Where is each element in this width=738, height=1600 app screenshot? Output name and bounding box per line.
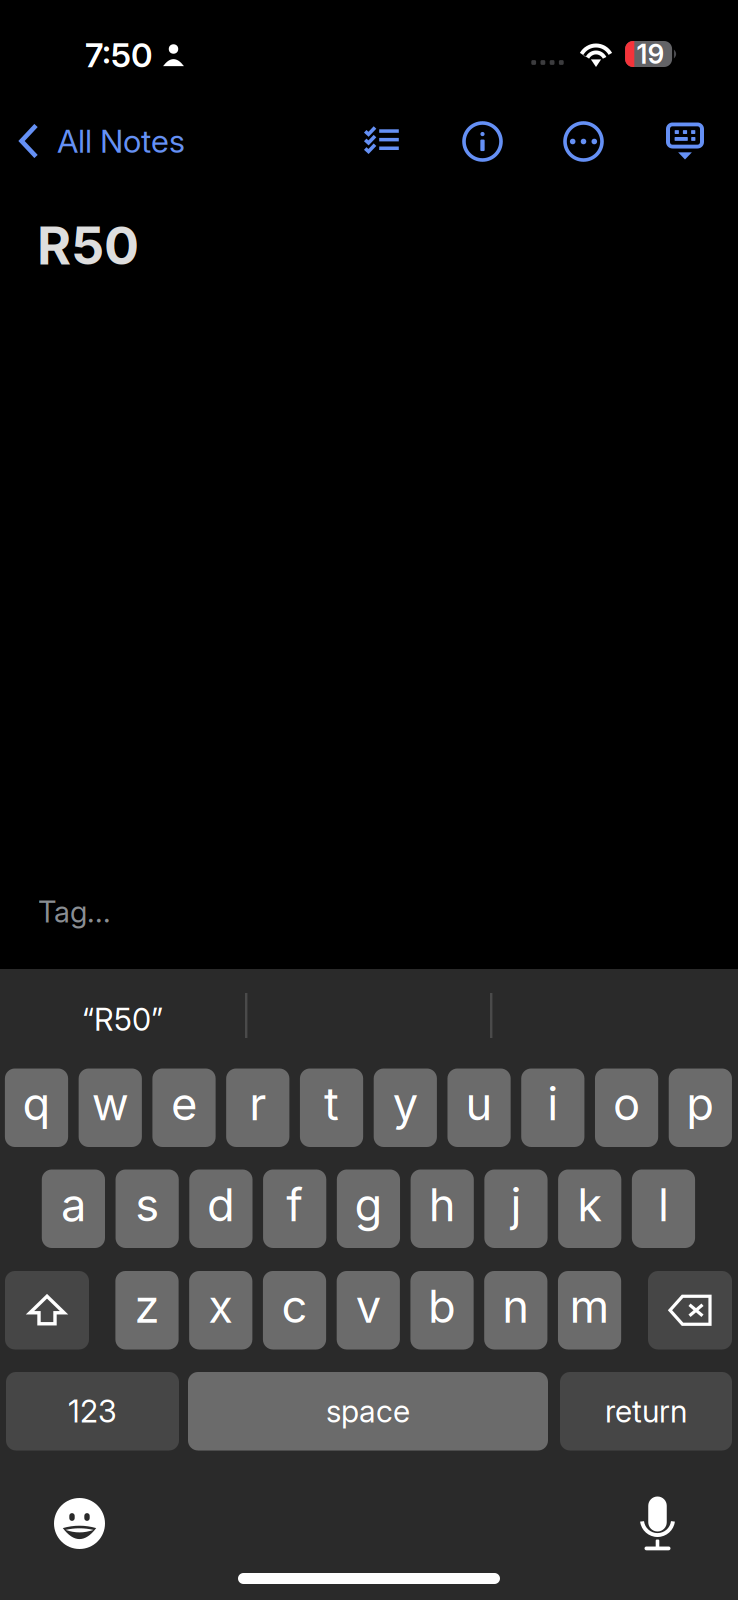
staticText: r bbox=[249, 1076, 266, 1131]
staticText: y bbox=[393, 1076, 418, 1131]
staticText: o bbox=[613, 1076, 640, 1131]
staticText: “R50” bbox=[82, 1001, 163, 1038]
button[interactable]: n bbox=[484, 1271, 547, 1349]
button[interactable]: Delete bbox=[648, 1271, 732, 1349]
staticText: w bbox=[92, 1076, 129, 1131]
staticText: k bbox=[577, 1177, 602, 1232]
button[interactable]: w bbox=[79, 1068, 142, 1147]
button[interactable]: x bbox=[189, 1271, 252, 1349]
button[interactable]: h bbox=[411, 1169, 474, 1248]
button[interactable]: v bbox=[337, 1271, 400, 1349]
staticText: n bbox=[502, 1279, 529, 1334]
staticText: All Notes bbox=[57, 122, 185, 160]
button[interactable]: space bbox=[188, 1372, 548, 1450]
button[interactable]: c bbox=[263, 1271, 326, 1349]
button[interactable]: i bbox=[521, 1068, 584, 1147]
staticText: x bbox=[208, 1279, 233, 1334]
staticText: j bbox=[510, 1177, 521, 1232]
staticText: 123 bbox=[68, 1393, 117, 1430]
staticText: 7:50 bbox=[85, 35, 153, 75]
staticText: Tag... bbox=[38, 894, 111, 929]
staticText: u bbox=[466, 1076, 493, 1131]
button[interactable]: t bbox=[300, 1068, 363, 1147]
button[interactable]: Dictate bbox=[640, 1487, 675, 1541]
button[interactable]: y bbox=[374, 1068, 437, 1147]
button[interactable]: b bbox=[410, 1271, 474, 1349]
staticText: q bbox=[22, 1076, 50, 1131]
staticText: t bbox=[324, 1076, 339, 1131]
staticText: v bbox=[356, 1279, 381, 1334]
button[interactable]: Checklist bbox=[364, 127, 399, 153]
button[interactable]: g bbox=[337, 1169, 400, 1248]
staticText: R50 bbox=[37, 214, 139, 277]
staticText: l bbox=[658, 1177, 669, 1232]
staticText: a bbox=[61, 1177, 86, 1232]
staticText: b bbox=[428, 1279, 456, 1334]
button[interactable]: e bbox=[152, 1068, 216, 1147]
staticText: z bbox=[134, 1279, 159, 1334]
button[interactable]: j bbox=[484, 1169, 548, 1248]
staticText: g bbox=[354, 1177, 382, 1232]
button[interactable]: d bbox=[189, 1169, 252, 1248]
button[interactable]: return bbox=[560, 1372, 732, 1450]
button[interactable]: r bbox=[226, 1068, 289, 1147]
button[interactable]: 123 bbox=[6, 1372, 179, 1450]
button[interactable]: All Notes bbox=[0, 113, 195, 169]
staticText: h bbox=[429, 1177, 456, 1232]
button[interactable]: z bbox=[115, 1271, 179, 1349]
button[interactable]: More options bbox=[565, 123, 602, 160]
staticText: d bbox=[207, 1177, 235, 1232]
staticText: 19 bbox=[637, 38, 665, 70]
button[interactable]: p bbox=[669, 1068, 732, 1147]
button[interactable]: Shift bbox=[5, 1271, 89, 1349]
button[interactable]: Emoji bbox=[54, 1498, 105, 1549]
staticText: e bbox=[171, 1076, 197, 1131]
button[interactable]: u bbox=[447, 1068, 511, 1147]
staticText: i bbox=[547, 1076, 558, 1131]
button[interactable]: Note info bbox=[464, 123, 501, 160]
staticText: f bbox=[286, 1177, 303, 1232]
button[interactable]: m bbox=[558, 1271, 621, 1349]
button[interactable]: Hide keyboard bbox=[666, 121, 704, 161]
staticText: c bbox=[281, 1279, 307, 1334]
button[interactable]: a bbox=[42, 1169, 105, 1248]
staticText: p bbox=[686, 1076, 714, 1131]
staticText: space bbox=[326, 1393, 410, 1430]
button[interactable]: o bbox=[595, 1068, 658, 1147]
staticText: s bbox=[135, 1177, 159, 1232]
button[interactable]: k bbox=[558, 1169, 621, 1248]
button[interactable]: q bbox=[5, 1068, 68, 1147]
staticText: return bbox=[605, 1393, 687, 1430]
button[interactable]: s bbox=[116, 1169, 179, 1248]
button[interactable]: l bbox=[632, 1169, 695, 1248]
staticText: m bbox=[570, 1279, 610, 1334]
button[interactable]: f bbox=[263, 1169, 326, 1248]
